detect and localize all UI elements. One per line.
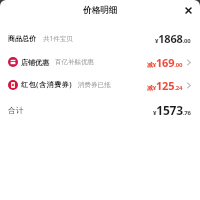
button[interactable]: 店铺优惠 <box>0 52 200 72</box>
staticText: 店铺优惠 <box>21 58 49 67</box>
staticText: 消费券已抵 <box>78 81 111 89</box>
staticText: ¥1573.76 <box>153 102 191 118</box>
button[interactable]: 红包(含消费券) <box>0 75 200 95</box>
staticText: 百亿补贴优惠 <box>55 58 94 66</box>
staticText: 减¥125.24 <box>147 78 183 93</box>
staticText: 合计 <box>8 105 24 115</box>
button[interactable]: Close <box>181 3 195 17</box>
staticText: ¥1868.00 <box>155 31 191 46</box>
staticText: 共1件宝贝 <box>43 34 73 43</box>
staticText: 红包(含消费券) <box>21 80 73 90</box>
staticText: 价格明细 <box>83 5 118 16</box>
staticText: 商品总价 <box>8 34 36 43</box>
staticText: 减¥169.00 <box>147 55 183 70</box>
